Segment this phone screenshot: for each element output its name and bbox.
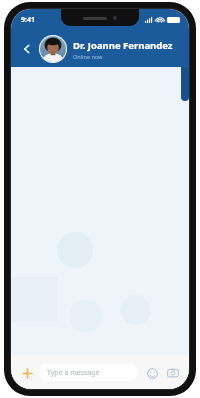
button[interactable]: Back (17, 39, 37, 59)
button[interactable]: Dr. Joanne Fernandez (73, 39, 181, 60)
staticText: Dr. Joanne Fernandez (73, 39, 173, 52)
staticText: Online now (73, 53, 103, 60)
button[interactable]: Add attachment (19, 365, 35, 381)
button[interactable]: Type a message (39, 364, 138, 381)
button[interactable]: Camera (165, 365, 181, 381)
staticText: 9:41 (21, 15, 35, 25)
button[interactable]: Contact photo (40, 36, 66, 62)
button[interactable]: Emoji (144, 365, 160, 381)
staticText: Type a message (47, 368, 100, 378)
